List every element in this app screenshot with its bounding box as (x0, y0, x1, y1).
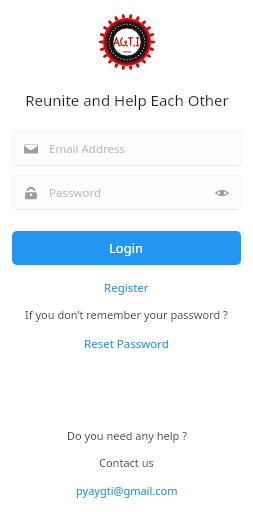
staticText: pyaygti@gmail.com (76, 483, 178, 498)
staticText: Password (49, 185, 102, 201)
staticText: Contact us (99, 455, 154, 470)
button[interactable]: Reset Password (79, 334, 174, 354)
button[interactable]: Password (12, 175, 241, 210)
staticText: Login (109, 239, 144, 257)
staticText: Email Address (49, 141, 126, 157)
button[interactable]: pyaygti@gmail.com (72, 482, 182, 499)
staticText: If you don’t remember your password ? (25, 307, 228, 322)
button[interactable]: Register (99, 278, 154, 298)
staticText: Register (104, 280, 149, 296)
button[interactable]: Login (12, 231, 241, 265)
staticText: Reset Password (84, 336, 169, 352)
button[interactable]: Show password (214, 185, 230, 201)
button[interactable]: Email Address (12, 131, 241, 166)
staticText: Do you need any help ? (67, 428, 187, 443)
staticText: Reunite and Help Each Other (25, 90, 229, 110)
